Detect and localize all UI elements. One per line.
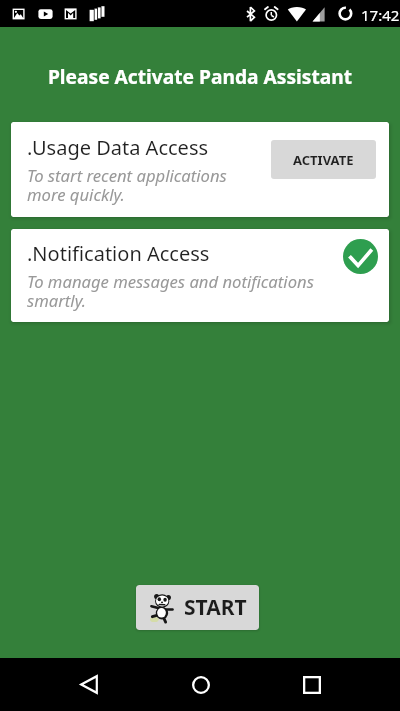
button[interactable]: ACTIVATE bbox=[271, 140, 376, 179]
staticText: ACTIVATE bbox=[293, 151, 354, 169]
staticText: To manage messages and notifications sma… bbox=[27, 270, 314, 312]
button[interactable]: Enabled bbox=[343, 239, 378, 274]
button[interactable]: Home bbox=[172, 658, 229, 711]
staticText: 17:42 bbox=[361, 5, 400, 25]
button[interactable]: Back bbox=[60, 658, 117, 711]
button[interactable]: START bbox=[136, 585, 259, 630]
button[interactable]: .Notification Access bbox=[11, 229, 389, 322]
staticText: .Notification Access bbox=[27, 240, 210, 267]
staticText: To start recent applications more quickl… bbox=[27, 164, 227, 206]
staticText: Please Activate Panda Assistant bbox=[0, 63, 400, 89]
button[interactable]: .Usage Data Access bbox=[11, 122, 389, 217]
button[interactable]: Recent apps bbox=[283, 658, 340, 711]
staticText: START bbox=[184, 593, 247, 622]
staticText: .Usage Data Access bbox=[27, 134, 209, 161]
